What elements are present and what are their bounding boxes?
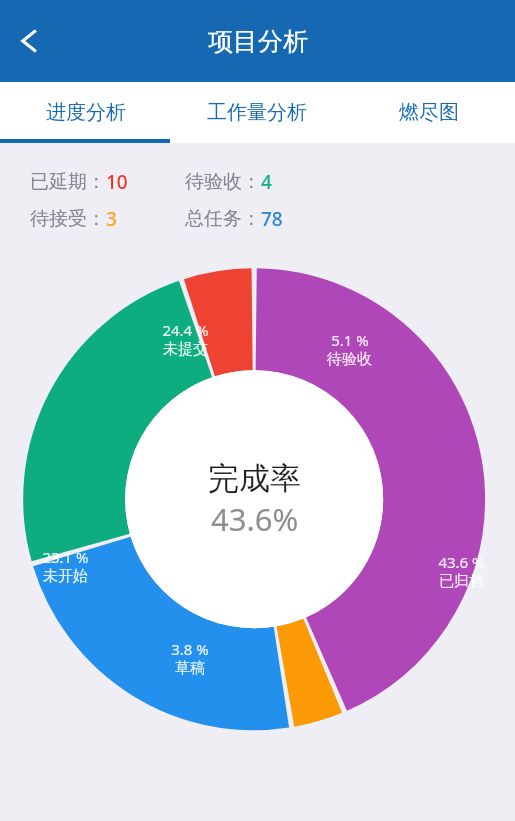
staticText: 43.6% [211, 498, 299, 540]
staticText: 草稿 [175, 659, 205, 678]
staticText: 78 [261, 206, 283, 232]
staticText: 10 [106, 169, 128, 195]
staticText: 待接受： [30, 207, 106, 231]
staticText: 总任务： [185, 207, 261, 231]
staticText: 未开始 [43, 567, 88, 586]
staticText: 进度分析 [46, 100, 126, 125]
button[interactable]: 燃尽图 [343, 82, 515, 143]
staticText: 待验收 [327, 350, 372, 369]
staticText: 4 [261, 169, 272, 195]
button[interactable]: 工作量分析 [171, 82, 343, 143]
staticText: 3.8 % [171, 639, 209, 659]
staticText: 未提交 [163, 340, 208, 359]
staticText: 项目分析 [208, 26, 308, 57]
staticText: 工作量分析 [207, 100, 307, 125]
staticText: 23.1 % [42, 547, 89, 567]
button[interactable]: Back [0, 10, 58, 72]
staticText: 完成率 [208, 459, 301, 498]
staticText: 24.4 % [162, 320, 209, 340]
staticText: 5.1 % [331, 330, 369, 350]
button[interactable]: 进度分析 [0, 82, 171, 143]
staticText: 已归档 [439, 572, 484, 591]
staticText: 3 [106, 206, 117, 232]
staticText: 燃尽图 [399, 100, 459, 125]
staticText: 已延期： [30, 170, 106, 194]
staticText: 43.6 % [438, 552, 485, 572]
staticText: 待验收： [185, 170, 261, 194]
